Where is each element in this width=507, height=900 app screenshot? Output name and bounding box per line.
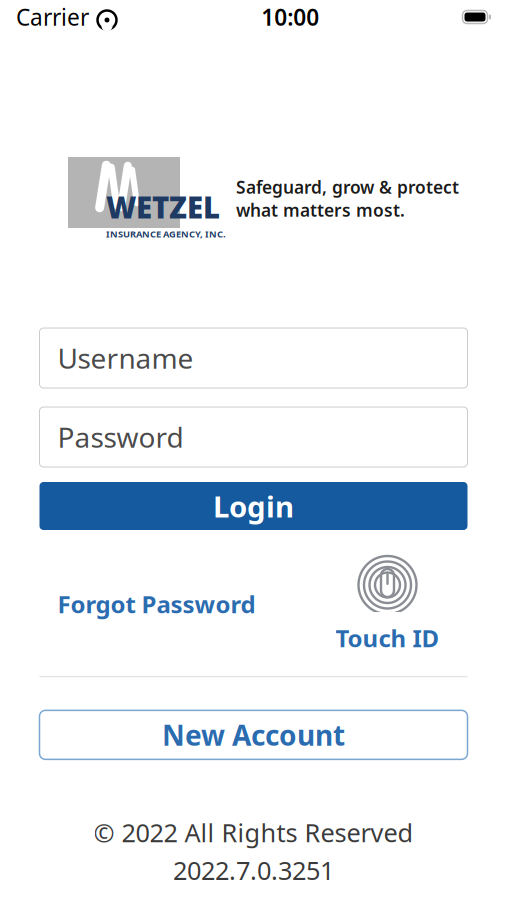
staticText: Username	[57, 339, 193, 377]
staticText: 2022.7.0.3251	[173, 853, 334, 887]
staticText: Login	[213, 486, 294, 525]
button[interactable]: New Account	[39, 710, 467, 759]
staticText: New Account	[162, 716, 345, 753]
button[interactable]: Login	[39, 482, 467, 530]
staticText: INSURANCE AGENCY, INC.	[106, 228, 226, 240]
button[interactable]: Forgot Password	[57, 580, 255, 628]
staticText: Forgot Password	[57, 588, 255, 620]
staticText: Password	[57, 418, 183, 456]
staticText: Safeguard, grow & protect what matters m…	[236, 175, 459, 221]
staticText: Touch ID	[335, 622, 439, 654]
button[interactable]: Touch ID	[335, 554, 439, 654]
staticText: Carrier	[16, 2, 89, 32]
staticText: 10:00	[261, 2, 319, 32]
staticText: © 2022 All Rights Reserved	[93, 816, 413, 849]
staticText: WETZEL	[106, 188, 220, 227]
